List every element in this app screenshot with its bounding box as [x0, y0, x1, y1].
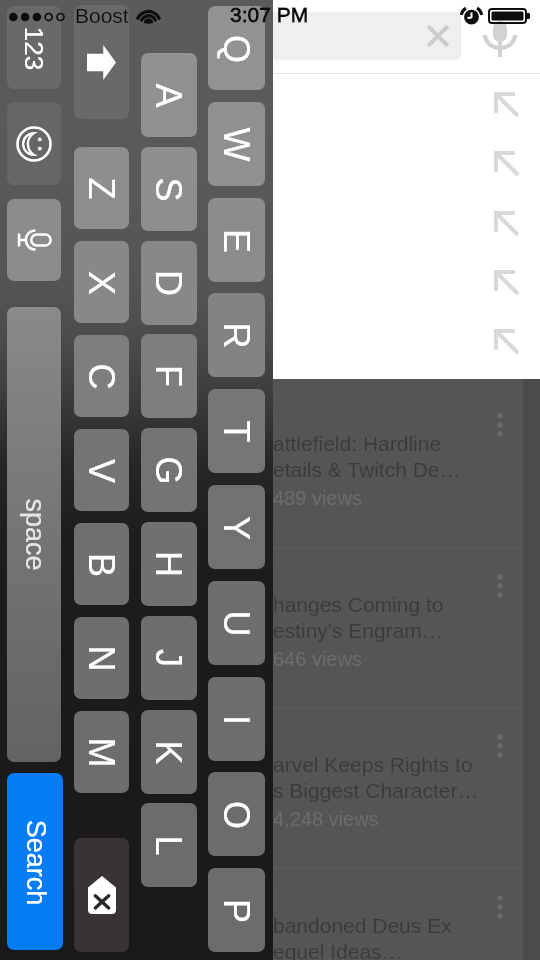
button[interactable]: O	[208, 772, 265, 856]
button[interactable]: Backspace	[74, 838, 129, 952]
staticText: N	[81, 645, 121, 671]
button[interactable]: hanges Coming to	[273, 547, 523, 707]
button[interactable]: Insert suggestion	[494, 92, 518, 116]
button[interactable]: N	[74, 617, 129, 699]
button[interactable]: Insert suggestion	[494, 211, 518, 235]
button[interactable]: More options	[497, 413, 503, 437]
staticText: V	[81, 458, 121, 483]
staticText: I	[216, 714, 256, 725]
button[interactable]: arvel Keeps Rights to	[273, 707, 523, 867]
staticText: R	[216, 322, 256, 348]
button[interactable]: G	[141, 428, 197, 512]
button[interactable]: W	[208, 102, 265, 186]
staticText: bandoned Deus Ex	[273, 914, 452, 937]
other: Alarm set	[462, 7, 481, 26]
button[interactable]: R	[208, 293, 265, 377]
button[interactable]: U	[208, 581, 265, 665]
button[interactable]: More options	[497, 734, 503, 758]
button[interactable]: T	[208, 389, 265, 473]
staticText: 3:07 PM	[230, 3, 309, 26]
button[interactable]: V	[74, 429, 129, 511]
button[interactable]: space	[7, 307, 61, 762]
button[interactable]: Insert suggestion	[494, 151, 518, 175]
button[interactable]: I	[208, 677, 265, 761]
staticText: P	[216, 898, 256, 923]
button[interactable]: X	[74, 241, 129, 323]
staticText: 489 views	[273, 487, 362, 509]
staticText: 4,248 views	[273, 808, 379, 830]
staticText: Search	[20, 819, 50, 905]
staticText: G	[149, 456, 189, 485]
button[interactable]: Y	[208, 485, 265, 569]
button[interactable]: More options	[497, 895, 503, 919]
button[interactable]: F	[141, 334, 197, 418]
staticText: T	[216, 420, 256, 442]
button[interactable]: A	[141, 53, 197, 137]
staticText: X	[81, 270, 121, 295]
staticText: C	[81, 363, 121, 389]
button[interactable]: S	[141, 147, 197, 231]
button[interactable]: L	[141, 803, 197, 887]
button[interactable]: H	[141, 522, 197, 606]
staticText: S	[149, 177, 189, 202]
button[interactable]: More options	[497, 574, 503, 598]
staticText: etails & Twitch De…	[273, 458, 461, 481]
staticText: 646 views	[273, 648, 362, 670]
button[interactable]: Search	[7, 773, 63, 950]
button[interactable]: attlefield: Hardline	[273, 386, 523, 546]
staticText: J	[149, 649, 189, 667]
staticText: equel Ideas…	[273, 940, 403, 960]
staticText: A	[149, 83, 189, 108]
staticText: H	[149, 551, 189, 577]
staticText: E	[216, 228, 256, 253]
staticText: M	[81, 737, 121, 767]
button[interactable]: Voice search	[485, 21, 515, 58]
button[interactable]	[240, 12, 461, 60]
button[interactable]: Clear text	[424, 22, 452, 50]
button[interactable]: K	[141, 710, 197, 794]
button[interactable]: M	[74, 711, 129, 793]
staticText: Z	[81, 177, 121, 199]
button[interactable]: D	[141, 241, 197, 325]
staticText: D	[149, 270, 189, 296]
button[interactable]: Numbers	[7, 6, 61, 89]
button[interactable]: Dictation	[7, 199, 61, 281]
staticText: Q	[216, 34, 256, 63]
button[interactable]: Insert suggestion	[494, 329, 518, 353]
staticText: 123	[19, 26, 48, 70]
button[interactable]: E	[208, 198, 265, 282]
staticText: W	[216, 127, 256, 161]
staticText: O	[216, 800, 256, 829]
staticText: K	[149, 740, 189, 765]
staticText: space	[19, 498, 49, 571]
staticText: Y	[216, 515, 256, 540]
staticText: arvel Keeps Rights to	[273, 753, 473, 776]
button[interactable]: B	[74, 523, 129, 605]
button[interactable]: Shift	[74, 5, 129, 119]
button[interactable]: Q	[208, 6, 265, 90]
staticText: B	[81, 552, 121, 577]
staticText: L	[149, 835, 189, 856]
button[interactable]: Z	[74, 147, 129, 229]
staticText: hanges Coming to	[273, 593, 444, 616]
staticText: U	[216, 610, 256, 636]
button[interactable]: J	[141, 616, 197, 700]
staticText: s Biggest Character…	[273, 779, 479, 802]
staticText: estiny's Engram…	[273, 619, 443, 642]
button[interactable]: Insert suggestion	[494, 270, 518, 294]
staticText: Boost	[75, 4, 129, 27]
button[interactable]: C	[74, 335, 129, 417]
button[interactable]: P	[208, 868, 265, 952]
staticText: attlefield: Hardline	[273, 432, 442, 455]
button[interactable]: bandoned Deus Ex	[273, 868, 523, 960]
button[interactable]: Emoji	[7, 102, 61, 185]
staticText: F	[149, 365, 189, 387]
